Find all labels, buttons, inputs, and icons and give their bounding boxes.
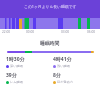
staticText: 4時41分: [53, 56, 72, 63]
staticText: 39分: [6, 72, 17, 79]
staticText: 浅い睡眠: [57, 64, 70, 68]
button[interactable]: 8分: [53, 72, 74, 84]
staticText: 目が覚めた: [57, 80, 74, 84]
staticText: 1時30分: [6, 56, 25, 63]
button[interactable]: 4時41分: [53, 56, 72, 68]
staticText: 06:00: [87, 30, 96, 34]
staticText: 03:00: [61, 30, 70, 34]
button[interactable]: 1時30分: [6, 56, 25, 68]
staticText: この1ヶ月よりも長い睡眠です: [24, 4, 77, 9]
staticText: 睡眠時間: [40, 40, 60, 46]
button[interactable]: 39分: [6, 72, 23, 84]
staticText: 深い睡眠: [10, 64, 23, 68]
staticText: 8分: [53, 72, 61, 79]
staticText: レム睡眠: [10, 80, 23, 84]
staticText: 22:00: [2, 30, 11, 34]
staticText: 00:00: [26, 30, 35, 34]
